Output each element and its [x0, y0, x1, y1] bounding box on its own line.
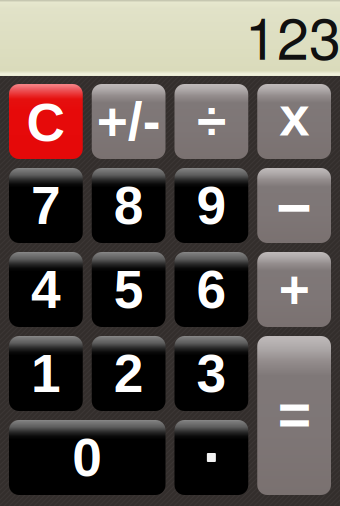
staticText: x: [279, 86, 309, 147]
button[interactable]: 8: [92, 168, 166, 243]
button[interactable]: 4: [9, 252, 83, 327]
button[interactable]: 0: [9, 420, 165, 495]
button[interactable]: x: [257, 84, 331, 159]
staticText: −: [276, 173, 312, 242]
button[interactable]: [174, 420, 248, 495]
button[interactable]: −: [257, 168, 331, 243]
staticText: 123: [245, 0, 340, 76]
staticText: 5: [114, 260, 144, 319]
staticText: =: [278, 382, 311, 447]
staticText: 0: [72, 428, 102, 487]
button[interactable]: =: [257, 336, 331, 495]
staticText: +/-: [97, 92, 161, 151]
staticText: 7: [31, 176, 61, 235]
button[interactable]: 9: [174, 168, 248, 243]
button[interactable]: 5: [92, 252, 166, 327]
staticText: 4: [31, 260, 61, 319]
staticText: 8: [114, 176, 144, 235]
staticText: 1: [31, 344, 61, 403]
staticText: 9: [196, 176, 226, 235]
button[interactable]: 7: [9, 168, 83, 243]
staticText: +: [279, 260, 310, 319]
button[interactable]: +/-: [92, 84, 166, 159]
staticText: 3: [196, 344, 226, 403]
staticText: 6: [196, 260, 226, 319]
button[interactable]: C: [9, 84, 83, 159]
button[interactable]: 2: [92, 336, 166, 411]
staticText: C: [26, 93, 65, 152]
button[interactable]: ÷: [174, 84, 248, 159]
button[interactable]: 6: [174, 252, 248, 327]
staticText: ÷: [197, 91, 226, 150]
button[interactable]: +: [257, 252, 331, 327]
staticText: 2: [114, 344, 144, 403]
button[interactable]: 3: [174, 336, 248, 411]
button[interactable]: 1: [9, 336, 83, 411]
